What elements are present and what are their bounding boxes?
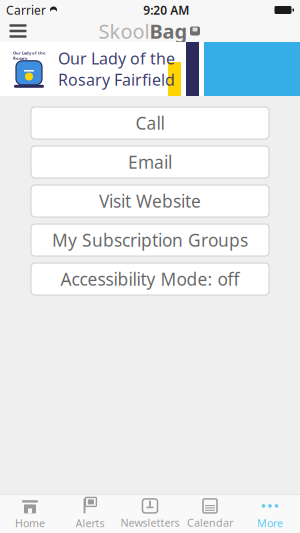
- staticText: My Subscription Groups: [52, 228, 248, 251]
- staticText: More: [257, 516, 283, 530]
- staticText: Bag: [149, 18, 187, 44]
- button[interactable]: Visit Website: [31, 185, 269, 217]
- staticText: Email: [128, 150, 172, 173]
- staticText: Our Lady of the Rosary Fairfield: [58, 48, 175, 90]
- button[interactable]: More: [240, 495, 300, 533]
- staticText: Call: [135, 111, 164, 134]
- staticText: Carrier: [6, 2, 46, 18]
- button[interactable]: Home: [0, 495, 60, 533]
- button[interactable]: Newsletters: [120, 495, 180, 533]
- staticText: Home: [15, 516, 45, 530]
- staticText: 9:20 AM: [143, 2, 189, 18]
- button[interactable]: My Subscription Groups: [31, 224, 269, 256]
- staticText: Skool: [98, 18, 149, 44]
- staticText: Calendar: [187, 515, 233, 530]
- staticText: Accessibility Mode: off: [60, 267, 239, 290]
- button[interactable]: Email: [31, 146, 269, 178]
- button[interactable]: Alerts: [60, 495, 120, 533]
- staticText: Newsletters: [120, 515, 179, 530]
- button[interactable]: Accessibility Mode: off: [31, 263, 269, 295]
- staticText: Alerts: [75, 516, 104, 530]
- button[interactable]: Calendar: [180, 495, 240, 533]
- button[interactable]: Menu: [0, 20, 36, 42]
- button[interactable]: Call: [31, 107, 269, 139]
- staticText: Our Lady of the Rosary: [13, 50, 45, 61]
- staticText: Visit Website: [99, 189, 201, 212]
